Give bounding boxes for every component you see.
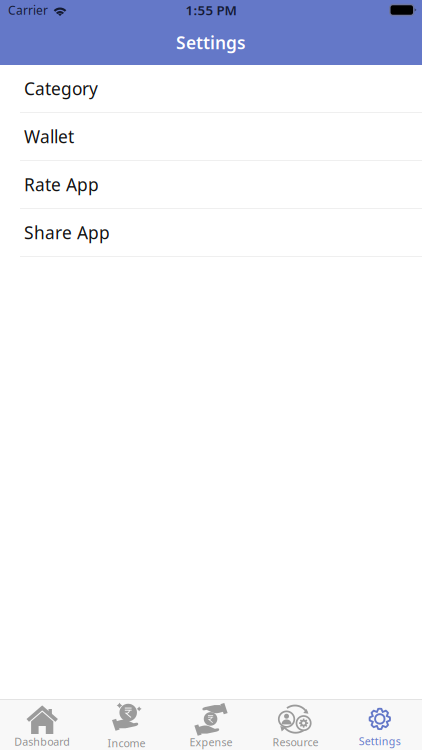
staticText: Settings (359, 734, 401, 748)
staticText: Income (108, 736, 146, 750)
staticText: 1:55 PM (185, 1, 236, 19)
staticText: Wallet (24, 125, 74, 148)
button[interactable]: Rate App (0, 161, 422, 209)
staticText: Rate App (24, 173, 99, 196)
staticText: Resource (272, 735, 318, 749)
staticText: Carrier (8, 2, 48, 18)
button[interactable]: Settings (338, 699, 422, 750)
button[interactable]: Resource (253, 698, 338, 750)
button[interactable]: Dashboard (0, 698, 84, 750)
staticText: Share App (24, 221, 110, 244)
staticText: Dashboard (14, 734, 70, 749)
button[interactable]: Wallet (0, 113, 422, 161)
staticText: Expense (189, 735, 232, 749)
staticText: Category (24, 77, 98, 100)
button[interactable]: Income (84, 697, 169, 750)
button[interactable]: Category (0, 65, 422, 113)
staticText: Settings (176, 31, 246, 54)
button[interactable]: Expense (169, 698, 253, 750)
button[interactable]: Share App (0, 209, 422, 257)
